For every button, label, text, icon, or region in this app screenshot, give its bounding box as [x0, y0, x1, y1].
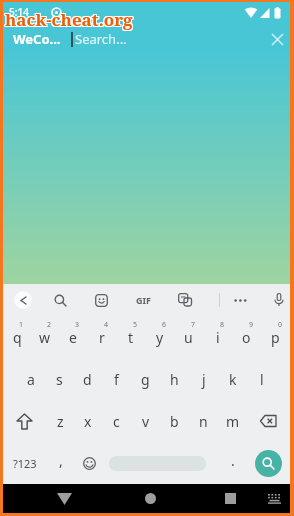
button[interactable]: b	[160, 400, 189, 442]
button[interactable]: r	[87, 316, 116, 358]
staticText: hack-cheat.org	[4, 7, 132, 30]
button[interactable]: GIF	[131, 291, 156, 309]
staticText: 3	[75, 320, 80, 330]
staticText: 2	[47, 320, 52, 330]
staticText: hack-cheat.org	[6, 9, 134, 32]
staticText: 0	[278, 320, 283, 330]
staticText: 5:14	[9, 5, 29, 19]
button[interactable]	[264, 26, 290, 52]
staticText: hack-cheat.org	[6, 8, 134, 31]
staticText: 5	[133, 320, 138, 330]
button[interactable]: o	[232, 316, 261, 358]
button[interactable]	[75, 442, 104, 484]
button[interactable]: p	[261, 316, 290, 358]
staticText: hack-cheat.org	[5, 8, 133, 31]
button[interactable]	[261, 484, 287, 513]
staticText: r	[99, 328, 105, 347]
button[interactable]: ,	[46, 442, 75, 484]
staticText: w	[39, 328, 51, 347]
staticText: i	[216, 328, 220, 347]
staticText: v	[142, 412, 150, 431]
button[interactable]: w	[31, 316, 59, 358]
staticText: hack-cheat.org	[4, 8, 132, 31]
staticText: hack-cheat.org	[5, 7, 133, 30]
staticText: h	[170, 370, 179, 389]
staticText: Search...	[75, 30, 127, 48]
staticText: hack-cheat.org	[6, 7, 134, 30]
staticText: 4	[104, 320, 109, 330]
staticText: k	[229, 370, 237, 389]
button[interactable]	[270, 291, 288, 309]
staticText: GIF	[136, 294, 151, 306]
staticText: 6	[162, 320, 167, 330]
button[interactable]: j	[189, 358, 218, 400]
button[interactable]	[247, 442, 290, 484]
staticText: ?123	[13, 456, 37, 471]
button[interactable]	[51, 291, 69, 309]
staticText: t	[128, 328, 134, 347]
staticText: g	[141, 370, 150, 389]
button[interactable]	[3, 400, 46, 442]
staticText: WeCo...	[13, 30, 61, 48]
staticText: j	[202, 370, 206, 389]
button[interactable]: l	[247, 358, 276, 400]
staticText: ,	[59, 451, 63, 470]
staticText: p	[271, 328, 280, 347]
staticText: 7	[191, 320, 196, 330]
button[interactable]	[176, 291, 194, 309]
button[interactable]: d	[73, 358, 102, 400]
button[interactable]: ?123	[3, 442, 46, 484]
staticText: x	[84, 412, 92, 431]
staticText: c	[113, 412, 120, 431]
button[interactable]: q	[3, 316, 31, 358]
button[interactable]	[231, 291, 249, 309]
button[interactable]: a	[17, 358, 45, 400]
staticText: 9	[249, 320, 254, 330]
staticText: q	[13, 328, 22, 347]
staticText: z	[57, 412, 64, 431]
button[interactable]: z	[46, 400, 74, 442]
staticText: n	[199, 412, 208, 431]
button[interactable]	[135, 484, 165, 513]
button[interactable]	[247, 400, 290, 442]
button[interactable]	[49, 484, 79, 513]
staticText: m	[226, 412, 240, 431]
button[interactable]: t	[116, 316, 145, 358]
button[interactable]: Search...	[71, 26, 127, 52]
staticText: e	[69, 328, 77, 347]
button[interactable]: u	[174, 316, 203, 358]
button[interactable]: y	[145, 316, 174, 358]
button[interactable]	[92, 291, 110, 309]
button[interactable]: h	[160, 358, 189, 400]
staticText: s	[56, 370, 63, 389]
button[interactable]: c	[102, 400, 131, 442]
staticText: .	[231, 451, 235, 470]
staticText: l	[260, 370, 264, 389]
button[interactable]	[215, 484, 245, 513]
button[interactable]: f	[102, 358, 131, 400]
button[interactable]: e	[59, 316, 87, 358]
button[interactable]: m	[218, 400, 247, 442]
button[interactable]: s	[45, 358, 73, 400]
staticText: a	[27, 370, 35, 389]
staticText: b	[170, 412, 179, 431]
button[interactable]	[109, 442, 206, 484]
staticText: 1	[19, 320, 24, 330]
button[interactable]: x	[74, 400, 102, 442]
staticText: hack-cheat.org	[4, 9, 132, 32]
staticText: d	[83, 370, 92, 389]
staticText: hack-cheat.org	[5, 9, 133, 32]
staticText: f	[114, 370, 119, 389]
button[interactable]: k	[218, 358, 247, 400]
button[interactable]: g	[131, 358, 160, 400]
button[interactable]: i	[203, 316, 232, 358]
button[interactable]: n	[189, 400, 218, 442]
button[interactable]: .	[218, 442, 247, 484]
staticText: 8	[220, 320, 225, 330]
button[interactable]: v	[131, 400, 160, 442]
staticText: o	[242, 328, 251, 347]
staticText: u	[184, 328, 193, 347]
staticText: y	[156, 328, 164, 347]
button[interactable]	[14, 291, 32, 309]
